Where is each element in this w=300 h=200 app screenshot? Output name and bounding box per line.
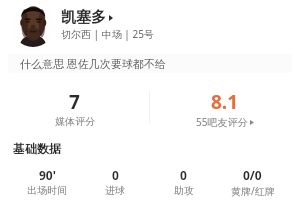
staticText: 7 (69, 89, 80, 115)
staticText: 8.1 (211, 89, 239, 115)
staticText: 出场时间 (27, 184, 67, 197)
button[interactable]: 凯塞多 (61, 8, 113, 27)
staticText: 0/0 (243, 167, 262, 183)
staticText: 切尔西 | 中场 | 25号 (61, 27, 154, 41)
button[interactable]: 0/0 (218, 167, 287, 198)
button[interactable]: 90' (13, 167, 81, 197)
staticText: 基础数据 (13, 141, 61, 156)
staticText: 进球 (105, 184, 125, 197)
staticText: 0 (180, 167, 187, 183)
button[interactable]: 什么意思 恩佐几次要球都不给 (8, 54, 292, 73)
staticText: 黄牌/红牌 (231, 184, 275, 198)
button[interactable]: 0 (149, 167, 218, 197)
staticText: 0 (112, 167, 119, 183)
staticText: 凯塞多 (61, 8, 106, 27)
button[interactable]: 7 (0, 85, 149, 129)
staticText: 90' (39, 167, 56, 183)
button[interactable]: Player avatar (11, 3, 55, 47)
button[interactable]: 0 (81, 167, 149, 197)
staticText: 什么意思 恩佐几次要球都不给 (20, 56, 166, 71)
staticText: 55吧友评分 (196, 115, 248, 129)
button[interactable]: 8.1 (150, 85, 300, 129)
staticText: 助攻 (174, 184, 194, 197)
staticText: 媒体评分 (55, 115, 95, 128)
